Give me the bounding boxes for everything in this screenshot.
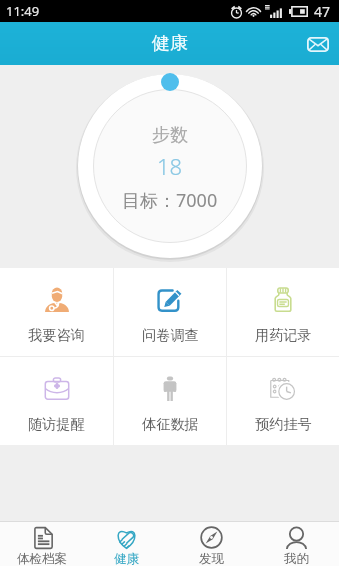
staticText: 47 (314, 2, 331, 21)
staticText: 随访提醒 (28, 415, 85, 433)
staticText: 18 (157, 151, 183, 181)
staticText: 用药记录 (255, 326, 312, 344)
staticText: 体检档案 (17, 551, 67, 566)
button[interactable]: 健康 (84, 522, 169, 566)
staticText: 体征数据 (142, 415, 199, 433)
staticText: 发现 (199, 551, 224, 566)
button[interactable]: 问卷调查 (114, 268, 226, 356)
staticText: 我要咨询 (28, 326, 85, 344)
button[interactable]: 我要咨询 (0, 268, 113, 356)
staticText: 步数 (152, 124, 188, 147)
staticText: 问卷调查 (142, 326, 199, 344)
staticText: 预约挂号 (255, 415, 312, 433)
button[interactable]: 预约挂号 (227, 357, 339, 445)
staticText: 健康 (152, 32, 188, 55)
button[interactable]: 发现 (169, 522, 254, 566)
staticText: 目标：7000 (122, 188, 218, 213)
button[interactable]: 体征数据 (114, 357, 226, 445)
staticText: 健康 (114, 551, 139, 566)
button[interactable]: Messages (300, 26, 336, 62)
button[interactable]: 随访提醒 (0, 357, 113, 445)
staticText: 我的 (284, 551, 309, 566)
button[interactable]: 我的 (254, 522, 339, 566)
staticText: 11:49 (6, 2, 40, 20)
button[interactable]: 体检档案 (0, 522, 84, 566)
button[interactable]: 用药记录 (227, 268, 339, 356)
